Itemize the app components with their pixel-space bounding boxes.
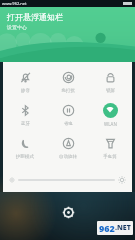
button[interactable]: 蓝牙 — [5, 102, 45, 127]
staticText: 静音 — [21, 88, 30, 94]
button[interactable]: 静音 — [5, 69, 45, 94]
staticText: 省电 — [64, 121, 73, 127]
staticText: 设置中心 — [7, 24, 27, 30]
staticText: 自动旋转 — [59, 154, 77, 160]
button[interactable]: 省电 — [48, 102, 88, 127]
staticText: 免打扰 — [61, 88, 75, 94]
button[interactable]: 手电筒 — [90, 135, 130, 160]
staticText: 打开悬浮通知栏 — [7, 12, 63, 22]
button[interactable]: 自动旋转 — [48, 135, 88, 160]
button[interactable]: Brightness — [9, 171, 126, 189]
button[interactable]: 锁屏 — [90, 69, 130, 94]
staticText: 手电筒 — [103, 154, 117, 160]
button[interactable]: 免打扰 — [48, 69, 88, 94]
staticText: 962 — [99, 222, 115, 234]
staticText: 锁屏 — [106, 88, 115, 94]
staticText: 蓝牙 — [21, 121, 30, 127]
staticText: WLAN — [104, 121, 117, 127]
button[interactable]: 护眼模式 — [5, 135, 45, 160]
button[interactable]: Settings — [58, 202, 78, 222]
button[interactable]: WLAN — [90, 102, 130, 127]
staticText: .NET — [115, 223, 131, 233]
staticText: 护眼模式 — [16, 154, 34, 160]
staticText: www.962.net — [2, 1, 27, 6]
